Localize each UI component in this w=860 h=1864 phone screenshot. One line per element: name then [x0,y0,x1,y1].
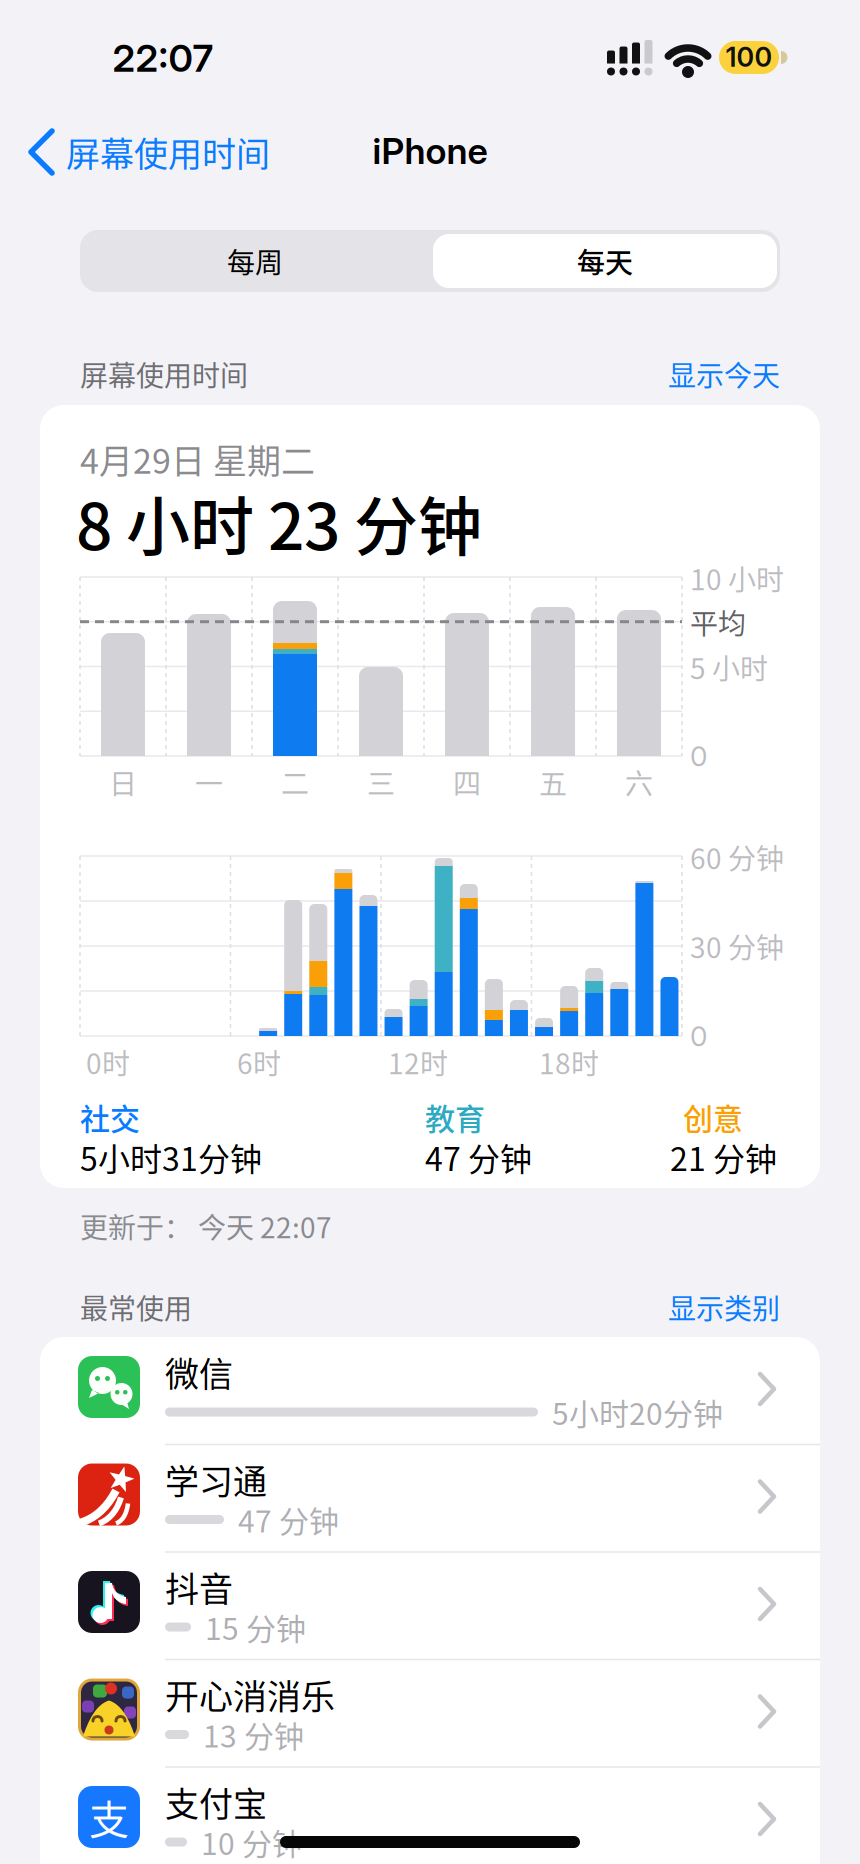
staticText: 0 [690,739,707,772]
staticText: 创意 [683,1096,743,1138]
staticText: 60 分钟 [690,837,784,877]
staticText: 日 [109,762,137,802]
staticText: 0 [690,1019,707,1052]
staticText: 一 [195,762,223,802]
staticText: 13 分钟 [203,1713,304,1756]
staticText: 8 小时 23 分钟 [76,477,482,567]
staticText: 4月29日 星期二 [80,435,315,483]
staticText: 6时 [237,1042,281,1082]
staticText: 支 [89,1789,129,1845]
staticText: 最常使用 [80,1287,192,1327]
staticText: 四 [453,762,481,802]
staticText: 每周 [227,241,283,281]
staticText: 显示今天 [668,354,780,394]
staticText: 100 [725,41,772,73]
staticText: 30 分钟 [690,926,784,966]
staticText: 学习通 [165,1455,267,1503]
staticText: 10 小时 [690,558,784,598]
staticText: 5小时31分钟 [80,1134,262,1180]
staticText: 二 [281,762,309,802]
staticText: 社交 [80,1096,140,1138]
staticText: 0时 [86,1042,130,1082]
staticText: 显示类别 [668,1287,780,1327]
staticText: 47 分钟 [238,1498,339,1541]
staticText: 五 [539,762,567,802]
staticText: 5小时20分钟 [552,1391,723,1433]
staticText: 每天 [577,241,633,281]
staticText: 5 小时 [690,647,768,687]
staticText: 18时 [539,1042,599,1082]
staticText: 屏幕使用时间 [66,128,270,176]
staticText: 抖音 [165,1563,233,1611]
staticText: iPhone [372,130,487,172]
staticText: 屏幕使用时间 [80,354,248,394]
staticText: 微信 [165,1348,233,1396]
staticText: 教育 [425,1096,485,1138]
staticText: 10 分钟 [201,1821,302,1863]
staticText: 支付宝 [165,1778,267,1826]
staticText: 12时 [388,1042,448,1082]
staticText: 15 分钟 [205,1606,306,1648]
staticText: 平均 [690,602,746,642]
staticText: 开心消消乐 [165,1670,335,1718]
staticText: 三 [367,762,395,802]
staticText: 47 分钟 [425,1134,532,1180]
staticText: 更新于： 今天 22:07 [80,1206,332,1246]
staticText: 21 分钟 [670,1134,777,1180]
staticText: 22:07 [112,36,213,80]
staticText: 六 [625,762,653,802]
